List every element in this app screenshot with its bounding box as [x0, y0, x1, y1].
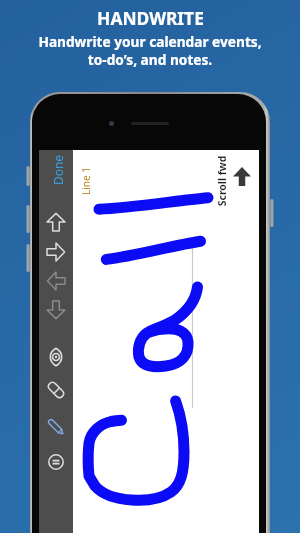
button[interactable]: Pen — [39, 413, 73, 441]
staticText: Scroll fwd — [214, 155, 228, 206]
button[interactable]: Menu — [39, 448, 73, 476]
button[interactable]: Move left — [39, 267, 73, 295]
staticText: Handwrite your calendar events, to-do’s,… — [38, 32, 262, 69]
button[interactable]: Move up — [39, 208, 73, 236]
staticText: HANDWRITE — [97, 6, 204, 30]
button[interactable]: Move right — [39, 238, 73, 266]
button[interactable]: Scroll fwd — [211, 155, 255, 207]
staticText: Line 1 — [79, 167, 93, 195]
button[interactable]: Lasso select — [39, 343, 73, 371]
button[interactable]: Done — [35, 159, 79, 181]
button[interactable]: Move down — [39, 296, 73, 324]
staticText: Done — [49, 154, 65, 185]
button[interactable]: Eraser — [39, 376, 73, 404]
